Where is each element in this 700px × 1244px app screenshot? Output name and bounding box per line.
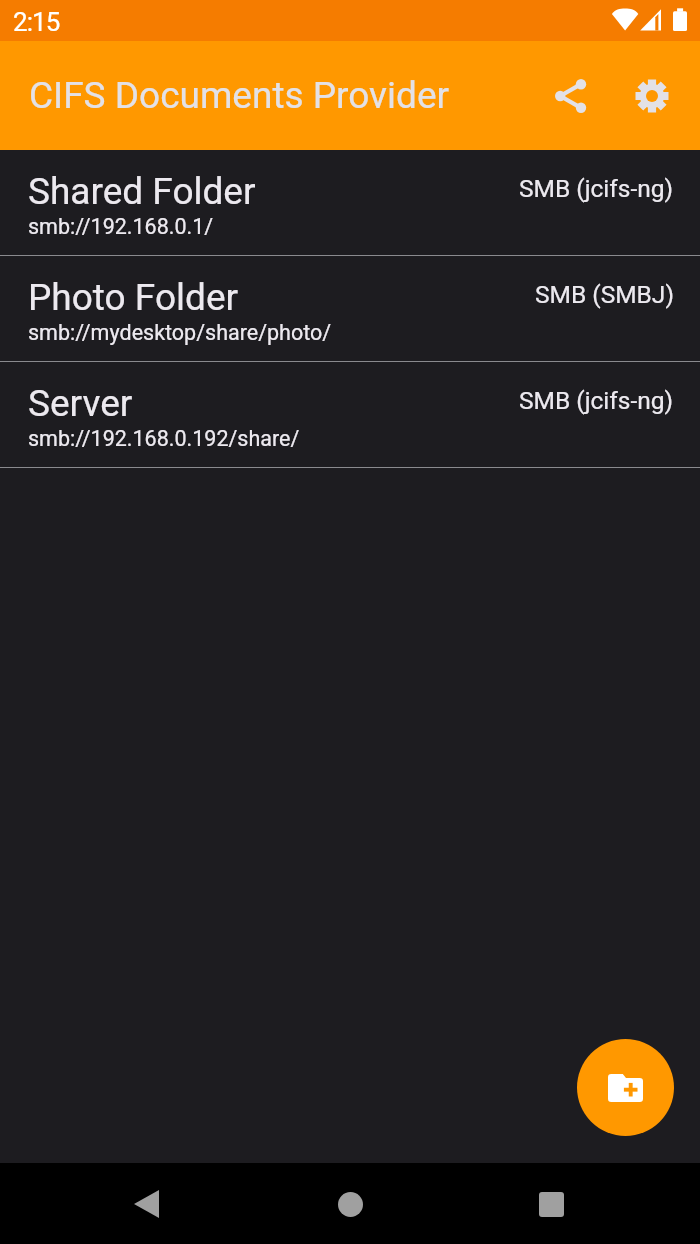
staticText: Photo Folder	[28, 276, 239, 319]
staticText: 2:15	[13, 7, 60, 37]
button[interactable]: Settings	[611, 55, 693, 137]
staticText: SMB (jcifs-ng)	[519, 386, 674, 415]
button[interactable]: Back	[106, 1164, 186, 1244]
staticText: Shared Folder	[28, 170, 256, 213]
button[interactable]: Home	[310, 1164, 390, 1244]
button[interactable]: Photo Folder	[0, 256, 700, 362]
button[interactable]: Share	[530, 55, 612, 137]
staticText: Server	[28, 382, 133, 425]
staticText: CIFS Documents Provider	[29, 74, 450, 117]
button[interactable]: Add folder	[577, 1039, 674, 1136]
staticText: smb://mydesktop/share/photo/	[28, 320, 332, 345]
button[interactable]: Shared Folder	[0, 150, 700, 256]
button[interactable]: Recents	[511, 1164, 591, 1244]
staticText: smb://192.168.0.192/share/	[28, 426, 300, 451]
button[interactable]: Server	[0, 362, 700, 468]
staticText: SMB (jcifs-ng)	[519, 174, 674, 203]
staticText: smb://192.168.0.1/	[28, 214, 214, 239]
staticText: SMB (SMBJ)	[535, 280, 674, 309]
